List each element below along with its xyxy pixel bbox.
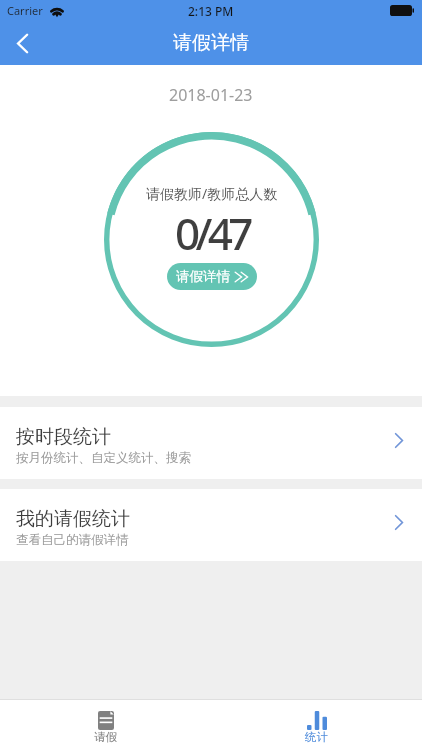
button[interactable]: 统计 (211, 699, 422, 750)
staticText: 请假详情 (173, 31, 249, 55)
staticText: 按时段统计 (16, 425, 111, 449)
button[interactable]: 按时段统计 (0, 407, 422, 479)
staticText: 按月份统计、自定义统计、搜索 (16, 450, 191, 466)
staticText: 统计 (305, 730, 328, 744)
button[interactable]: 我的请假统计 (0, 489, 422, 561)
staticText: 0/47 (175, 203, 249, 263)
staticText: 请假详情 (176, 268, 230, 285)
staticText: 请假 (94, 730, 117, 744)
staticText: 请假教师/教师总人数 (146, 184, 278, 203)
staticText: 查看自己的请假详情 (16, 532, 129, 548)
button[interactable]: Back (0, 21, 44, 65)
button[interactable]: 请假详情 (167, 263, 257, 290)
staticText: 我的请假统计 (16, 507, 130, 531)
button[interactable]: 请假 (0, 699, 211, 750)
staticText: 2018-01-23 (169, 84, 253, 106)
staticText: Carrier (7, 3, 43, 18)
staticText: 2:13 PM (188, 3, 234, 19)
